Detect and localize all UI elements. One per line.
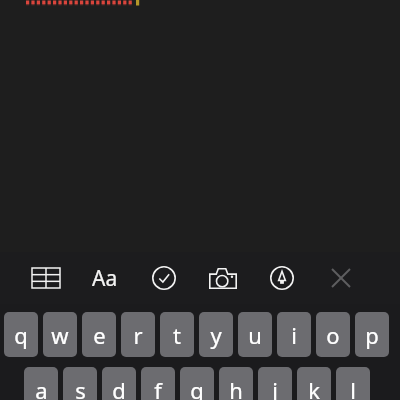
staticText: u	[248, 320, 262, 350]
button[interactable]: Checklist	[147, 252, 181, 304]
button[interactable]: w	[43, 312, 77, 357]
staticText: y	[210, 320, 222, 350]
button[interactable]: q	[4, 312, 38, 357]
button[interactable]: h	[219, 367, 253, 400]
button[interactable]: k	[297, 367, 331, 400]
staticText: o	[326, 320, 340, 350]
staticText: w	[51, 320, 69, 350]
staticText: h	[229, 375, 243, 400]
staticText: t	[173, 320, 181, 350]
button[interactable]: l	[336, 367, 370, 400]
button[interactable]: Text format	[88, 252, 122, 304]
button[interactable]: d	[102, 367, 136, 400]
button[interactable]: j	[258, 367, 292, 400]
staticText: p	[365, 320, 379, 350]
button[interactable]: Camera	[206, 252, 240, 304]
button[interactable]: Markup	[265, 252, 299, 304]
button[interactable]: p	[355, 312, 389, 357]
button[interactable]: o	[316, 312, 350, 357]
staticText: e	[93, 320, 106, 350]
button[interactable]: Insert table	[29, 252, 63, 304]
staticText: q	[14, 320, 28, 350]
button[interactable]: e	[82, 312, 116, 357]
staticText: g	[190, 375, 204, 400]
button[interactable]: u	[238, 312, 272, 357]
staticText: Aa	[92, 264, 118, 293]
staticText: l	[350, 375, 356, 400]
staticText: a	[35, 375, 48, 400]
staticText: j	[272, 375, 278, 400]
staticText: d	[112, 375, 126, 400]
staticText: r	[133, 320, 143, 350]
button[interactable]: Dismiss keyboard	[324, 252, 358, 304]
button[interactable]: r	[121, 312, 155, 357]
staticText: k	[308, 375, 320, 400]
button[interactable]: y	[199, 312, 233, 357]
staticText: i	[291, 320, 297, 350]
staticText: s	[75, 375, 86, 400]
button[interactable]: f	[141, 367, 175, 400]
button[interactable]: t	[160, 312, 194, 357]
button[interactable]: a	[24, 367, 58, 400]
staticText: f	[154, 375, 162, 400]
button[interactable]: s	[63, 367, 97, 400]
button[interactable]: i	[277, 312, 311, 357]
button[interactable]: g	[180, 367, 214, 400]
